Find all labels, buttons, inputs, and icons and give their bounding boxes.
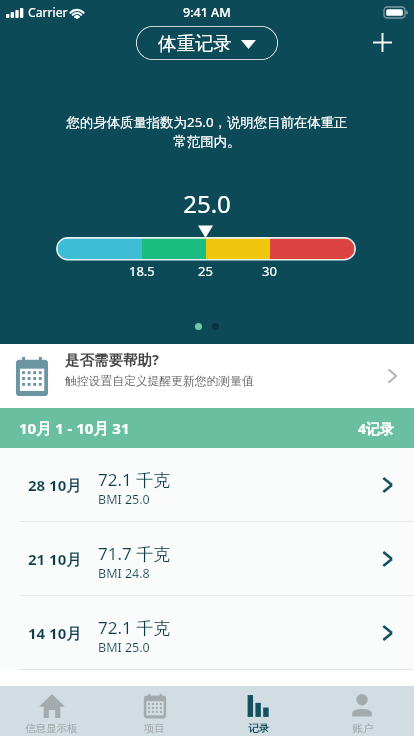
staticText: Carrier (28, 4, 68, 21)
staticText: 项目 (144, 722, 165, 735)
button[interactable]: 是否需要帮助? (0, 344, 414, 408)
staticText: 您的身体质量指数为25.0，说明您目前在体重正常范围内。 (60, 113, 354, 150)
staticText: 72.1 千克 (98, 616, 171, 639)
staticText: BMI 25.0 (98, 639, 150, 656)
staticText: 25.0 (0, 187, 414, 220)
button[interactable]: 信息显示板 (0, 686, 103, 736)
button[interactable]: 14 10月 (0, 596, 414, 670)
staticText: 10月 1 - 10月 31 (19, 418, 130, 438)
staticText: 21 10月 (28, 549, 82, 569)
button[interactable]: 21 10月 (0, 522, 414, 596)
staticText: 14 10月 (28, 623, 82, 643)
button[interactable]: 记录 (206, 686, 310, 736)
staticText: 72.1 千克 (98, 468, 171, 491)
staticText: 25 (198, 262, 213, 280)
staticText: 9:41 AM (183, 4, 231, 21)
staticText: BMI 25.0 (98, 491, 150, 508)
staticText: 信息显示板 (25, 722, 78, 735)
staticText: 4记录 (358, 419, 395, 438)
staticText: 18.5 (129, 262, 155, 280)
button[interactable]: 体重记录 (136, 26, 278, 60)
staticText: 71.7 千克 (98, 542, 171, 565)
staticText: BMI 24.8 (98, 565, 150, 582)
staticText: 触控设置自定义提醒更新您的测量值 (65, 374, 254, 389)
staticText: 是否需要帮助? (65, 349, 159, 369)
staticText: 账户 (352, 722, 373, 735)
staticText: 记录 (248, 722, 269, 735)
staticText: 28 10月 (28, 475, 82, 495)
button[interactable]: Add record (359, 25, 405, 60)
button[interactable]: 账户 (310, 686, 414, 736)
staticText: 30 (262, 262, 277, 280)
button[interactable]: 28 10月 (0, 448, 414, 522)
button[interactable]: 项目 (103, 686, 206, 736)
staticText: 体重记录 (158, 32, 232, 55)
